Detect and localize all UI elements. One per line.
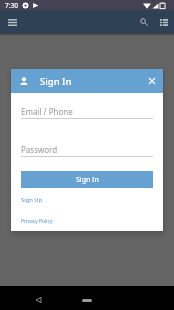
staticText: 7:30 — [5, 1, 18, 10]
staticText: Sign Up — [21, 196, 43, 204]
button[interactable]: Menu — [5, 15, 19, 29]
button[interactable]: Change view — [156, 14, 172, 30]
button[interactable]: Home — [72, 288, 102, 310]
staticText: Privacy Policy — [21, 218, 53, 225]
staticText: Sign In — [40, 75, 72, 88]
button[interactable]: Back — [26, 288, 50, 310]
staticText: Password — [21, 144, 58, 155]
button[interactable]: Privacy Policy — [21, 218, 53, 225]
staticText: Sign In — [76, 175, 99, 185]
button[interactable]: Sign Up — [21, 196, 43, 204]
staticText: Email / Phone — [21, 106, 73, 117]
button[interactable]: Search — [136, 14, 152, 30]
button[interactable]: Sign In — [21, 171, 153, 188]
button[interactable]: Sign In — [11, 69, 163, 93]
button[interactable]: Close — [145, 74, 159, 88]
